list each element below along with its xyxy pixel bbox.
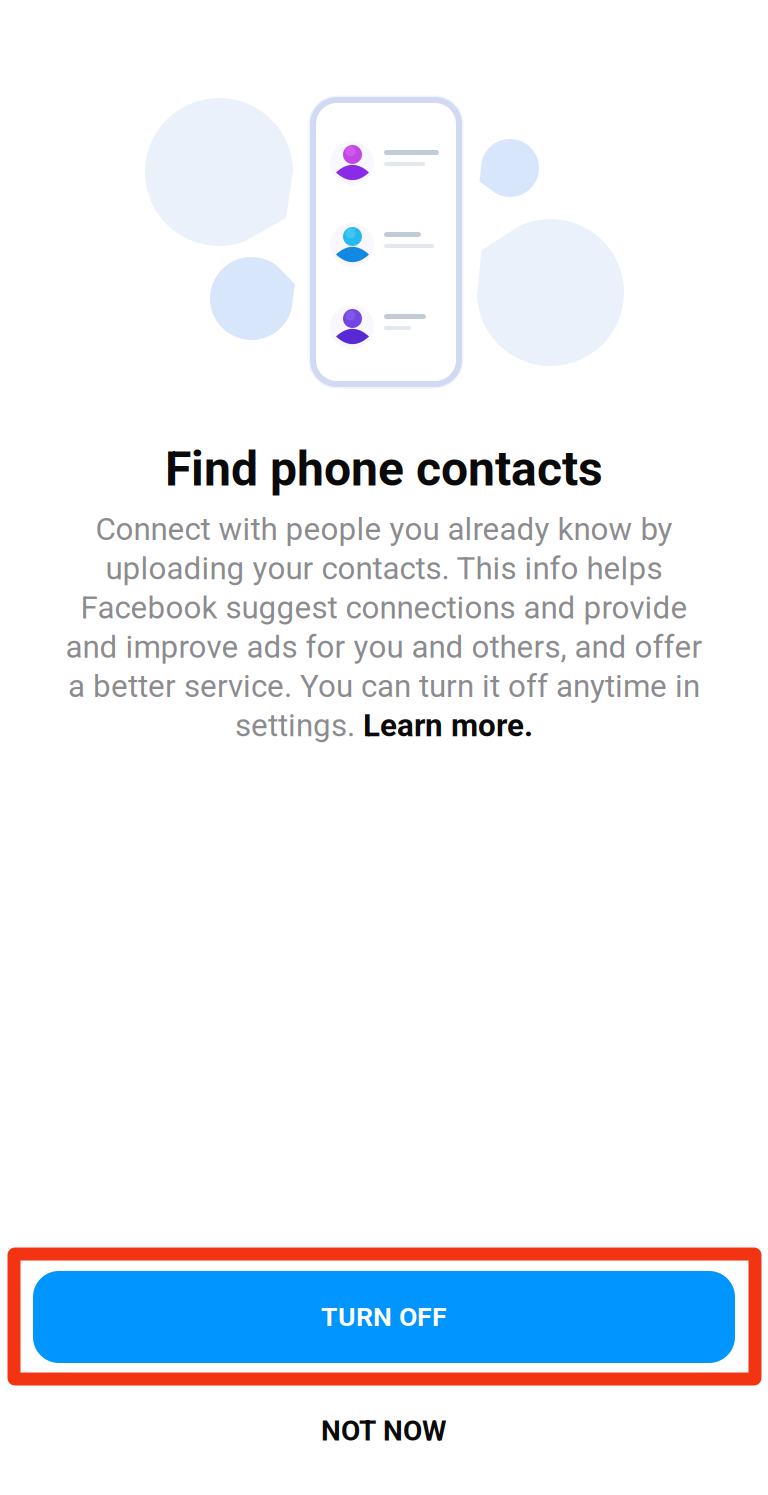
staticText: NOT NOW xyxy=(321,1415,447,1447)
staticText: TURN OFF xyxy=(321,1301,447,1333)
staticText: a better service. You can turn it off an… xyxy=(68,668,700,705)
staticText: settings. xyxy=(235,707,363,744)
button[interactable]: TURN OFF xyxy=(33,1271,735,1363)
staticText: Connect with people you already know by xyxy=(95,511,672,548)
staticText: and improve ads for you and others, and … xyxy=(65,629,702,665)
staticText: Find phone contacts xyxy=(165,441,603,497)
staticText: uploading your contacts. This info helps xyxy=(105,550,662,587)
staticText: Facebook suggest connections and provide xyxy=(80,589,687,626)
staticText: Learn more. xyxy=(363,707,533,744)
button[interactable]: NOT NOW xyxy=(0,1399,768,1463)
